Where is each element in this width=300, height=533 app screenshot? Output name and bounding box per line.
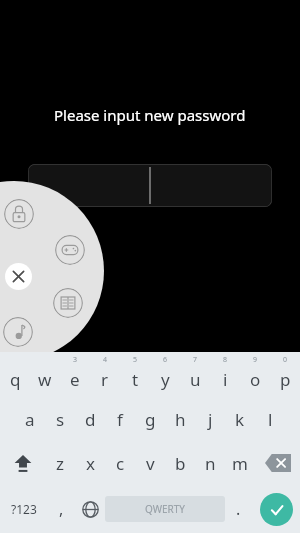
button[interactable]: 6 <box>150 352 180 397</box>
staticText: 9 <box>253 355 258 365</box>
button[interactable]: Shift <box>0 441 45 485</box>
staticText: j <box>208 408 213 431</box>
button[interactable]: k <box>225 397 255 441</box>
staticText: 7 <box>193 355 198 365</box>
staticText: e <box>70 368 80 391</box>
button[interactable]: q <box>0 352 30 397</box>
staticText: ?123 <box>11 501 37 517</box>
staticText: i <box>223 368 228 391</box>
staticText: a <box>25 408 35 431</box>
staticText: n <box>205 452 216 475</box>
button[interactable]: n <box>195 441 225 485</box>
button[interactable]: v <box>135 441 165 485</box>
button[interactable]: Music <box>3 317 33 347</box>
staticText: u <box>190 368 201 391</box>
staticText: s <box>56 408 65 431</box>
staticText: z <box>56 452 64 475</box>
button[interactable]: Backspace <box>255 441 300 485</box>
button[interactable]: x <box>75 441 105 485</box>
staticText: w <box>38 368 52 391</box>
staticText: f <box>117 408 123 431</box>
staticText: r <box>101 368 109 391</box>
button[interactable]: Space <box>105 496 225 522</box>
staticText: h <box>175 408 186 431</box>
staticText: m <box>232 452 248 475</box>
button[interactable]: Lock <box>4 199 34 229</box>
button[interactable]: 8 <box>210 352 240 397</box>
button[interactable]: ?123 <box>0 485 48 533</box>
staticText: p <box>280 368 291 391</box>
button[interactable]: 5 <box>120 352 150 397</box>
button[interactable]: . <box>225 485 252 533</box>
button[interactable]: 4 <box>90 352 120 397</box>
button[interactable]: 9 <box>240 352 270 397</box>
staticText: 8 <box>223 355 228 365</box>
button[interactable]: Change language <box>75 485 105 533</box>
button[interactable]: z <box>45 441 75 485</box>
staticText: k <box>235 408 245 431</box>
button[interactable]: h <box>165 397 195 441</box>
button[interactable]: , <box>48 485 75 533</box>
staticText: 4 <box>103 355 108 365</box>
staticText: 6 <box>163 355 168 365</box>
button[interactable]: f <box>105 397 135 441</box>
button[interactable]: 7 <box>180 352 210 397</box>
button[interactable]: 0 <box>270 352 300 397</box>
button[interactable]: a <box>15 397 45 441</box>
button[interactable]: 3 <box>60 352 90 397</box>
button[interactable]: Close <box>5 263 32 290</box>
staticText: , <box>59 498 64 520</box>
button[interactable]: g <box>135 397 165 441</box>
button[interactable]: Enter <box>260 493 293 526</box>
button[interactable]: s <box>45 397 75 441</box>
staticText: d <box>85 408 96 431</box>
staticText: t <box>132 368 139 391</box>
staticText: l <box>268 408 273 431</box>
button[interactable]: d <box>75 397 105 441</box>
staticText: y <box>161 368 170 391</box>
button[interactable]: w <box>30 352 60 397</box>
button[interactable]: m <box>225 441 255 485</box>
staticText: b <box>175 452 186 475</box>
button[interactable]: j <box>195 397 225 441</box>
button[interactable]: Password input <box>28 164 272 207</box>
staticText: v <box>146 452 155 475</box>
staticText: q <box>10 368 21 391</box>
staticText: o <box>250 368 261 391</box>
button[interactable]: c <box>105 441 135 485</box>
staticText: . <box>236 498 241 520</box>
button[interactable]: Books <box>53 288 83 318</box>
staticText: g <box>145 408 156 431</box>
staticText: Please input new password <box>54 105 246 125</box>
staticText: 3 <box>73 355 78 365</box>
button[interactable]: Games <box>55 235 85 265</box>
button[interactable]: b <box>165 441 195 485</box>
staticText: c <box>116 452 125 475</box>
staticText: 0 <box>283 355 288 365</box>
staticText: 5 <box>133 355 138 365</box>
button[interactable]: l <box>255 397 285 441</box>
staticText: x <box>86 452 95 475</box>
staticText: QWERTY <box>145 502 186 516</box>
